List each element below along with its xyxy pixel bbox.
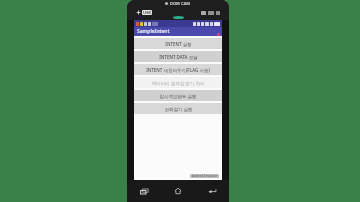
button[interactable]: INTENT 새창띄우기(FLAG 사용) bbox=[134, 64, 222, 75]
button[interactable]: 전화걸기 실행 bbox=[134, 103, 222, 114]
button[interactable]: Recents bbox=[127, 180, 161, 202]
button[interactable]: INTENT 실행 bbox=[134, 38, 222, 49]
staticText: INTENT 새창띄우기(FLAG 사용) bbox=[146, 67, 210, 73]
button[interactable]: Home bbox=[161, 180, 195, 202]
staticText: Android Emulator bbox=[192, 174, 217, 178]
staticText: SampleIntent bbox=[137, 28, 170, 35]
staticText: INTENT 실행 bbox=[165, 41, 192, 47]
staticText: 전화걸기 실행 bbox=[164, 106, 193, 112]
staticText: INTENT DATA 전달 bbox=[159, 54, 198, 60]
button[interactable]: Back bbox=[195, 180, 229, 202]
staticText: DOM CAM bbox=[170, 1, 191, 6]
button[interactable]: 액티비티 결과값 받기 처리 bbox=[134, 77, 222, 88]
staticText: 액티비티 결과값 받기 처리 bbox=[151, 80, 205, 86]
staticText: 암시적인텐트 실행 bbox=[159, 93, 197, 99]
button[interactable]: 암시적인텐트 실행 bbox=[134, 90, 222, 101]
button[interactable]: INTENT DATA 전달 bbox=[134, 51, 222, 62]
staticText: USB bbox=[143, 10, 151, 15]
